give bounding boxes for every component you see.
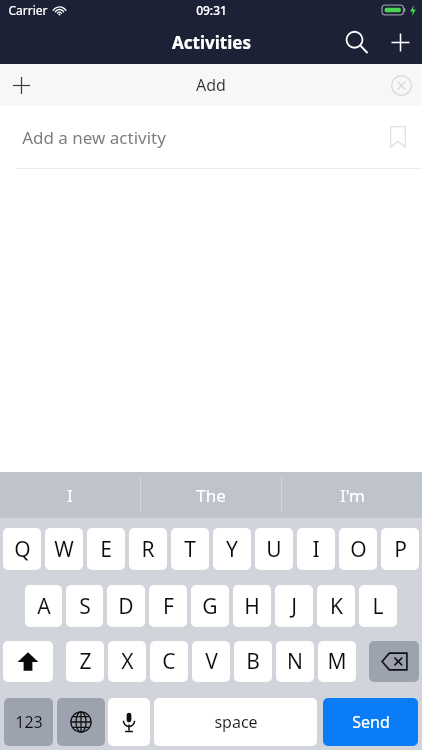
button[interactable]: Shift: [3, 641, 53, 682]
staticText: 09:31: [196, 2, 227, 18]
staticText: I: [67, 484, 73, 507]
button[interactable]: space: [154, 698, 317, 746]
staticText: E: [100, 535, 112, 564]
button[interactable]: T: [171, 528, 209, 570]
button[interactable]: B: [234, 641, 272, 682]
button[interactable]: Change keyboard: [57, 698, 105, 746]
staticText: F: [163, 592, 174, 621]
button[interactable]: W: [45, 528, 83, 570]
button[interactable]: The: [141, 472, 281, 518]
button[interactable]: N: [276, 641, 314, 682]
button[interactable]: D: [107, 585, 145, 627]
button[interactable]: Dictate: [108, 698, 150, 746]
button[interactable]: P: [381, 528, 419, 570]
staticText: N: [287, 647, 303, 676]
button[interactable]: U: [255, 528, 293, 570]
button[interactable]: Backspace: [369, 641, 419, 682]
button[interactable]: I'm: [282, 472, 422, 518]
staticText: U: [266, 535, 282, 564]
staticText: O: [350, 535, 367, 564]
button[interactable]: R: [129, 528, 167, 570]
staticText: S: [79, 592, 91, 621]
button[interactable]: H: [233, 585, 271, 627]
button[interactable]: F: [149, 585, 187, 627]
button[interactable]: Y: [213, 528, 251, 570]
staticText: Add: [196, 74, 226, 96]
staticText: The: [196, 484, 226, 507]
staticText: T: [184, 535, 196, 564]
button[interactable]: Add item: [0, 64, 42, 106]
staticText: K: [330, 592, 343, 621]
staticText: Z: [79, 647, 92, 676]
button[interactable]: Search: [334, 20, 378, 64]
button[interactable]: O: [339, 528, 377, 570]
button[interactable]: X: [108, 641, 146, 682]
staticText: space: [214, 711, 258, 733]
staticText: P: [394, 535, 407, 564]
staticText: Send: [352, 711, 390, 733]
button[interactable]: J: [275, 585, 313, 627]
button[interactable]: M: [318, 641, 356, 682]
staticText: R: [141, 535, 155, 564]
staticText: D: [118, 592, 134, 621]
button[interactable]: V: [192, 641, 230, 682]
staticText: B: [246, 647, 260, 676]
button[interactable]: L: [359, 585, 397, 627]
button[interactable]: I: [297, 528, 335, 570]
staticText: V: [205, 647, 218, 676]
button[interactable]: Add a new activity: [0, 106, 422, 168]
staticText: Activities: [172, 31, 251, 54]
staticText: 123: [15, 711, 43, 733]
button[interactable]: E: [87, 528, 125, 570]
staticText: H: [244, 592, 260, 621]
staticText: A: [37, 592, 51, 621]
staticText: G: [202, 592, 218, 621]
staticText: Q: [14, 535, 31, 564]
button[interactable]: S: [66, 585, 103, 627]
button[interactable]: 123: [4, 698, 53, 746]
staticText: C: [162, 647, 176, 676]
staticText: M: [327, 647, 347, 676]
button[interactable]: G: [191, 585, 229, 627]
staticText: I'm: [340, 484, 365, 507]
button[interactable]: C: [150, 641, 188, 682]
staticText: L: [372, 592, 384, 621]
button[interactable]: K: [317, 585, 355, 627]
button[interactable]: I: [0, 472, 140, 518]
staticText: I: [312, 535, 320, 564]
staticText: Carrier: [8, 2, 48, 18]
button[interactable]: Q: [3, 528, 41, 570]
staticText: Add a new activity: [22, 126, 166, 149]
staticText: X: [121, 647, 134, 676]
button[interactable]: Send: [323, 698, 418, 746]
staticText: Y: [226, 535, 238, 564]
button[interactable]: Z: [66, 641, 104, 682]
staticText: J: [291, 592, 297, 621]
staticText: W: [54, 535, 74, 564]
button[interactable]: A: [25, 585, 62, 627]
button[interactable]: Add: [378, 20, 422, 64]
button[interactable]: Close: [380, 64, 422, 106]
button[interactable]: Bookmark: [378, 117, 418, 157]
